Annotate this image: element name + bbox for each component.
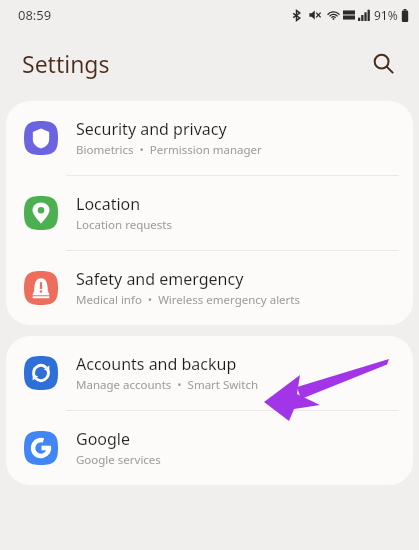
staticText: Google xyxy=(76,428,131,450)
button[interactable]: Security and privacy xyxy=(6,101,413,175)
staticText: Location xyxy=(76,193,141,215)
staticText: Medical info • Wireless emergency alerts xyxy=(76,292,300,308)
staticText: Settings xyxy=(22,48,110,79)
staticText: Accounts and backup xyxy=(76,353,237,375)
staticText: Security and privacy xyxy=(76,118,227,140)
staticText: Manage accounts • Smart Switch xyxy=(76,377,259,393)
button[interactable]: Safety and emergency xyxy=(6,251,413,325)
staticText: Biometrics • Permission manager xyxy=(76,142,262,158)
staticText: 91% xyxy=(374,7,398,23)
button[interactable]: Accounts and backup xyxy=(6,336,413,410)
staticText: Google services xyxy=(76,452,161,468)
staticText: Location requests xyxy=(76,217,172,233)
button[interactable]: Google xyxy=(6,411,413,485)
staticText: 08:59 xyxy=(18,6,52,24)
staticText: Safety and emergency xyxy=(76,268,244,290)
button[interactable]: Location xyxy=(6,176,413,250)
button[interactable]: Search xyxy=(361,41,405,85)
